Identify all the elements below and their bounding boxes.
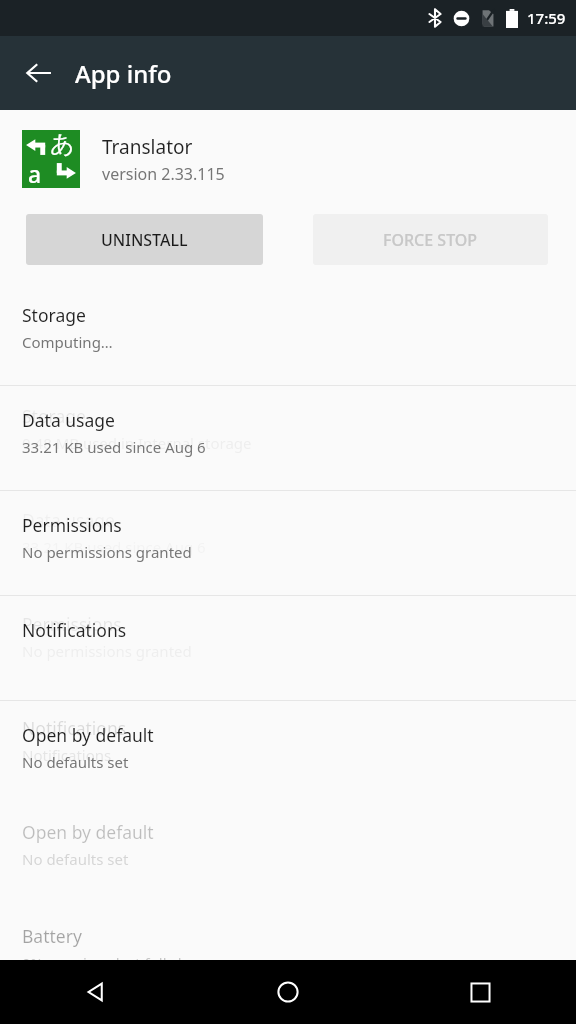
staticText: Open by default: [22, 723, 154, 747]
staticText: Notifications: [22, 716, 127, 740]
staticText: Notifications: [22, 618, 127, 642]
staticText: 33.21 KB used since Aug 6: [22, 437, 206, 457]
button[interactable]: Notifications: [0, 596, 576, 700]
staticText: Open by default: [22, 820, 154, 844]
staticText: App info: [75, 57, 172, 90]
button[interactable]: Back: [0, 960, 192, 1024]
staticText: Data usage: [22, 408, 115, 432]
staticText: UNINSTALL: [101, 229, 188, 251]
staticText: No permissions granted: [22, 641, 192, 661]
staticText: Notifications: [22, 745, 112, 765]
staticText: Storage: [22, 303, 86, 327]
button[interactable]: UNINSTALL: [26, 214, 263, 265]
button[interactable]: Navigate up: [13, 47, 65, 99]
staticText: version 2.33.115: [102, 163, 225, 185]
staticText: FORCE STOP: [383, 229, 478, 251]
staticText: Storage: [22, 404, 86, 428]
button[interactable]: Storage: [0, 281, 576, 385]
staticText: a: [28, 158, 42, 189]
staticText: Computing…: [22, 332, 113, 352]
staticText: Permissions: [22, 513, 122, 537]
staticText: あ: [50, 129, 75, 159]
staticText: No defaults set: [22, 849, 129, 869]
button[interactable]: Recent apps: [384, 960, 576, 1024]
staticText: 0.48 MB used in Internal storage: [22, 433, 252, 453]
staticText: 0% use since last full charge: [22, 953, 220, 973]
button[interactable]: Home: [192, 960, 384, 1024]
staticText: No defaults set: [22, 752, 129, 772]
button[interactable]: Open by default: [0, 701, 576, 805]
staticText: Battery: [22, 924, 82, 948]
staticText: No permissions granted: [22, 542, 192, 562]
button[interactable]: Data usage: [0, 386, 576, 490]
staticText: Data usage: [22, 508, 115, 532]
staticText: 33.21 KB used since Aug 6: [22, 537, 206, 557]
staticText: 17:59: [527, 8, 566, 28]
button[interactable]: Permissions: [0, 491, 576, 595]
staticText: Permissions: [22, 612, 122, 636]
button[interactable]: FORCE STOP: [313, 214, 548, 265]
staticText: Translator: [102, 134, 193, 160]
